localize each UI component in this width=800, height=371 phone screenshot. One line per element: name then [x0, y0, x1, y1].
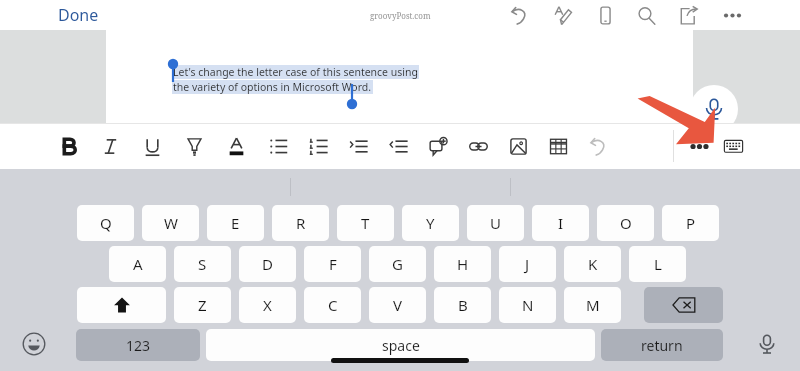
staticText: W [164, 213, 178, 233]
button[interactable]: Phone layout [590, 0, 620, 30]
button[interactable]: A [109, 246, 166, 282]
staticText: Done [58, 4, 99, 26]
button[interactable]: Search [631, 0, 661, 30]
button[interactable]: Undo [504, 0, 534, 30]
staticText: groovyPost.com [370, 10, 431, 21]
staticText: U [490, 213, 501, 233]
staticText: A [133, 254, 143, 274]
button[interactable]: Draw [548, 0, 578, 30]
button[interactable]: Bulleted list [262, 127, 294, 165]
button[interactable]: Y [402, 205, 459, 241]
button[interactable]: U [467, 205, 524, 241]
button[interactable]: Font color [220, 127, 252, 165]
button[interactable]: Bold [52, 127, 84, 165]
staticText: K [588, 254, 598, 274]
staticText: J [525, 254, 530, 274]
button[interactable]: Increase indent [342, 127, 374, 165]
button[interactable]: Dictate [690, 85, 738, 133]
button[interactable]: More options [717, 0, 747, 30]
button[interactable]: V [369, 287, 426, 323]
button[interactable]: Undo [582, 127, 614, 165]
button[interactable]: K [564, 246, 621, 282]
button[interactable]: 123 [76, 329, 200, 361]
button[interactable]: Backspace [644, 287, 723, 323]
button[interactable]: Add comment [422, 127, 454, 165]
button[interactable]: Highlight [178, 127, 210, 165]
staticText: N [522, 295, 534, 315]
staticText: Let's change the letter case of this sen… [173, 65, 418, 79]
button[interactable]: T [337, 205, 394, 241]
staticText: I [558, 213, 564, 233]
button[interactable]: Insert link [462, 127, 494, 165]
button[interactable]: B [434, 287, 491, 323]
button[interactable]: H [434, 246, 491, 282]
button[interactable]: L [629, 246, 686, 282]
button[interactable]: F [304, 246, 361, 282]
button[interactable]: E [207, 205, 264, 241]
button[interactable]: Share [673, 0, 703, 30]
button[interactable]: S [174, 246, 231, 282]
button[interactable]: Q [77, 205, 134, 241]
button[interactable]: Italic [94, 127, 126, 165]
staticText: T [361, 213, 370, 233]
button[interactable]: Done [52, 2, 105, 28]
staticText: Y [426, 213, 435, 233]
button[interactable]: J [499, 246, 556, 282]
staticText: 123 [126, 336, 151, 355]
button[interactable]: X [239, 287, 296, 323]
staticText: S [198, 254, 207, 274]
staticText: H [457, 254, 469, 274]
staticText: D [262, 254, 273, 274]
button[interactable]: Underline [136, 127, 168, 165]
button[interactable]: Emoji [16, 326, 52, 362]
button[interactable]: D [239, 246, 296, 282]
button[interactable]: R [272, 205, 329, 241]
staticText: X [263, 295, 272, 315]
staticText: G [392, 254, 403, 274]
button[interactable]: Insert table [542, 127, 574, 165]
staticText: E [231, 213, 240, 233]
button[interactable]: Dictation [750, 326, 784, 362]
button[interactable]: space [206, 329, 595, 361]
staticText: B [458, 295, 468, 315]
button[interactable]: Numbered list [302, 127, 334, 165]
staticText: F [329, 254, 337, 274]
button[interactable]: G [369, 246, 426, 282]
button[interactable]: Shift [77, 287, 166, 323]
staticText: R [296, 213, 306, 233]
staticText: return [641, 336, 683, 355]
button[interactable]: C [304, 287, 361, 323]
staticText: Q [100, 213, 112, 233]
staticText: O [620, 213, 632, 233]
staticText: V [393, 295, 403, 315]
button[interactable]: Insert picture [502, 127, 534, 165]
staticText: the variety of options in Microsoft Word… [173, 80, 372, 94]
staticText: C [328, 295, 338, 315]
button[interactable]: return [601, 329, 723, 361]
button[interactable]: M [564, 287, 621, 323]
staticText: M [586, 295, 600, 315]
button[interactable]: I [532, 205, 589, 241]
staticText: space [382, 336, 420, 355]
button[interactable]: Hide keyboard [717, 127, 749, 165]
button[interactable]: O [597, 205, 654, 241]
button[interactable]: Z [174, 287, 231, 323]
staticText: L [654, 254, 662, 274]
staticText: P [686, 213, 696, 233]
button[interactable]: Decrease indent [382, 127, 414, 165]
button[interactable]: W [142, 205, 199, 241]
button[interactable]: More formatting [683, 127, 715, 165]
staticText: Z [198, 295, 207, 315]
button[interactable]: N [499, 287, 556, 323]
button[interactable]: P [662, 205, 719, 241]
